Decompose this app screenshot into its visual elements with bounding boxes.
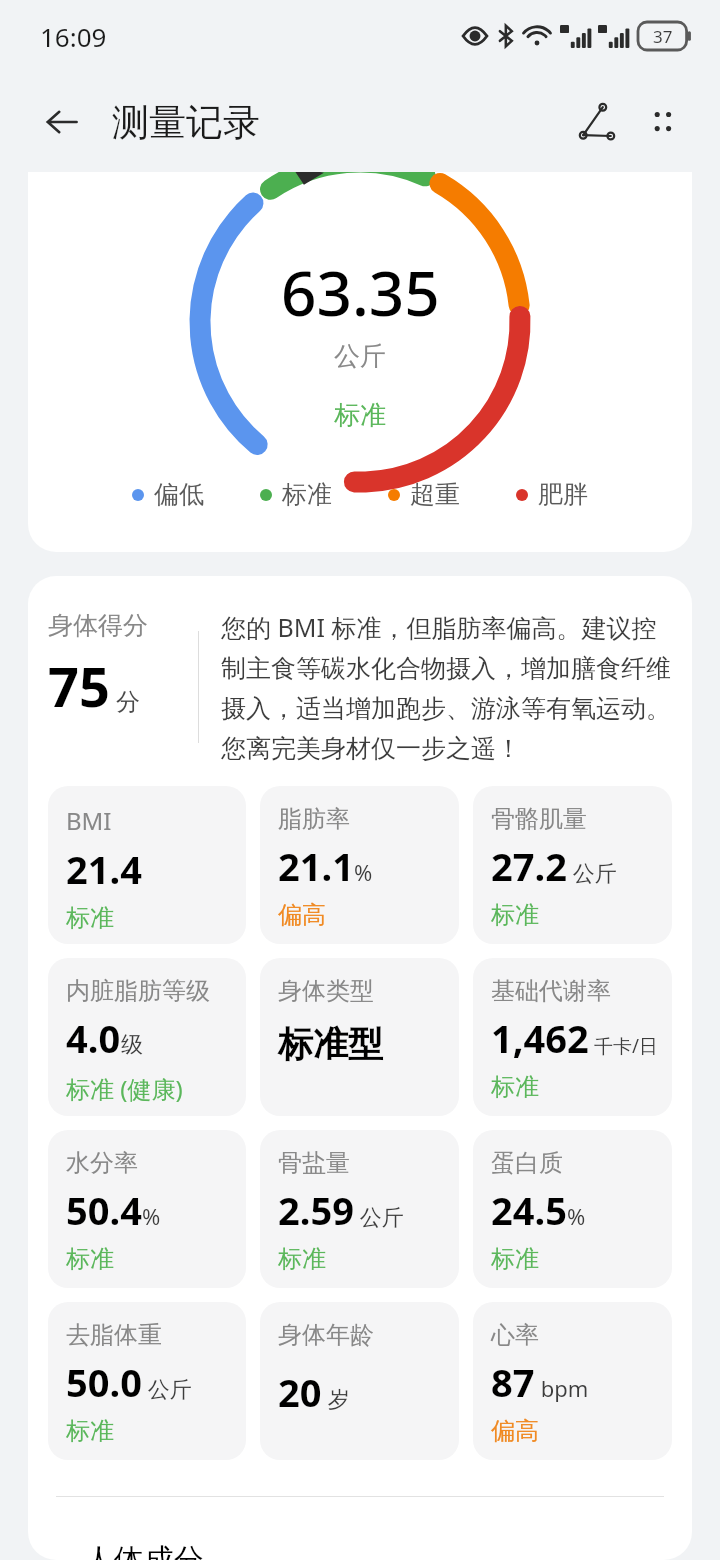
button[interactable]: 脂肪率: [260, 786, 459, 944]
button[interactable]: More options: [630, 90, 694, 154]
staticText: 21.4: [66, 843, 142, 895]
staticText: 63.35: [281, 250, 440, 334]
staticText: 蛋白质: [491, 1148, 563, 1178]
staticText: 级: [121, 1031, 143, 1059]
button[interactable]: 内脏脂肪等级: [48, 958, 246, 1116]
staticText: 标准: [282, 479, 332, 510]
staticText: 标准: [66, 1416, 114, 1446]
staticText: 基础代谢率: [491, 976, 611, 1006]
staticText: 您的 BMI 标准，但脂肪率偏高。建议控制主食等碳水化合物摄入，增加膳食纤维摄入…: [221, 610, 672, 764]
staticText: 公斤: [354, 1201, 404, 1231]
staticText: 标准 (健康): [66, 1072, 183, 1105]
staticText: 75: [48, 649, 110, 723]
button[interactable]: 身体类型: [260, 958, 459, 1116]
staticText: 2.59: [278, 1184, 354, 1236]
staticText: 50.0: [66, 1356, 142, 1408]
staticText: 4.0: [66, 1012, 121, 1064]
staticText: 公斤: [334, 340, 386, 373]
staticText: 偏低: [154, 479, 204, 510]
staticText: 去脂体重: [66, 1320, 162, 1350]
staticText: 27.2: [491, 840, 567, 892]
button[interactable]: Back: [34, 94, 90, 150]
button[interactable]: 水分率: [48, 1130, 246, 1288]
button[interactable]: Share: [566, 90, 630, 154]
staticText: 千卡/日: [589, 1033, 659, 1059]
staticText: %: [354, 857, 373, 887]
staticText: 标准: [491, 1244, 539, 1274]
staticText: 标准: [66, 1244, 114, 1274]
button[interactable]: 心率: [473, 1302, 672, 1460]
staticText: 标准: [491, 900, 539, 930]
staticText: 测量记录: [112, 99, 260, 146]
staticText: 身体年龄: [278, 1320, 374, 1350]
button[interactable]: 骨骼肌量: [473, 786, 672, 944]
staticText: 偏高: [278, 900, 326, 930]
staticText: 水分率: [66, 1148, 138, 1178]
staticText: 偏高: [491, 1416, 539, 1446]
staticText: 肥胖: [538, 479, 588, 510]
staticText: 身体得分: [48, 610, 148, 641]
staticText: 人体成分: [84, 1541, 204, 1560]
staticText: 16:09: [40, 19, 107, 54]
staticText: 标准: [278, 1244, 326, 1274]
staticText: 公斤: [142, 1373, 192, 1403]
button[interactable]: 身体年龄: [260, 1302, 459, 1460]
staticText: bpm: [535, 1373, 589, 1403]
staticText: 骨骼肌量: [491, 804, 587, 834]
staticText: 50.4: [66, 1184, 142, 1236]
button[interactable]: 蛋白质: [473, 1130, 672, 1288]
staticText: 标准型: [278, 1022, 383, 1066]
staticText: 骨盐量: [278, 1148, 350, 1178]
staticText: 公斤: [567, 857, 617, 887]
staticText: 37: [653, 25, 673, 48]
staticText: 标准: [491, 1072, 539, 1102]
staticText: 21.1: [278, 840, 354, 892]
staticText: 标准: [334, 399, 386, 432]
button[interactable]: 基础代谢率: [473, 958, 672, 1116]
staticText: 岁: [322, 1383, 350, 1413]
staticText: 87: [491, 1356, 535, 1408]
button[interactable]: BMI: [48, 786, 246, 944]
staticText: %: [567, 1201, 586, 1231]
staticText: BMI: [66, 804, 112, 837]
staticText: 心率: [491, 1320, 539, 1350]
staticText: 脂肪率: [278, 804, 350, 834]
button[interactable]: 去脂体重: [48, 1302, 246, 1460]
staticText: 身体类型: [278, 976, 374, 1006]
staticText: 分: [116, 687, 140, 717]
button[interactable]: 骨盐量: [260, 1130, 459, 1288]
staticText: 24.5: [491, 1184, 567, 1236]
staticText: 超重: [410, 479, 460, 510]
staticText: 内脏脂肪等级: [66, 976, 210, 1006]
staticText: 1,462: [491, 1012, 589, 1064]
staticText: 20: [278, 1366, 322, 1418]
staticText: %: [142, 1201, 161, 1231]
staticText: 标准: [66, 903, 114, 933]
